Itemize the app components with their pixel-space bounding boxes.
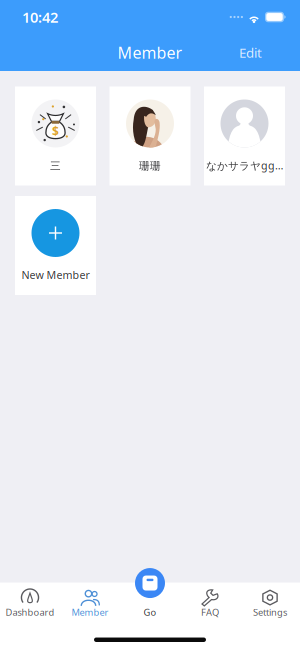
button[interactable]: なかサラヤgg… — [204, 86, 285, 185]
button[interactable]: 珊珊 — [109, 86, 190, 185]
staticText: Go — [143, 606, 156, 618]
staticText: Member — [117, 42, 182, 63]
button[interactable]: Dashboard — [0, 583, 60, 628]
button[interactable]: Go — [135, 568, 165, 598]
staticText: Settings — [253, 606, 287, 618]
staticText: Dashboard — [5, 606, 54, 618]
staticText: New Member — [21, 268, 89, 282]
staticText: $ — [52, 123, 59, 139]
staticText: 10:42 — [22, 7, 58, 27]
button[interactable]: Edit — [229, 37, 272, 68]
staticText: 三 — [50, 159, 61, 172]
staticText: 珊珊 — [139, 159, 161, 172]
button[interactable]: Go — [120, 583, 180, 628]
staticText: Member — [71, 606, 108, 618]
button[interactable]: Member — [60, 583, 120, 628]
button[interactable]: New Member — [15, 196, 96, 295]
staticText: なかサラヤgg… — [206, 158, 283, 172]
staticText: Edit — [239, 44, 262, 61]
staticText: FAQ — [201, 606, 219, 618]
button[interactable]: FAQ — [180, 583, 240, 628]
button[interactable]: $ — [15, 86, 96, 185]
button[interactable]: Settings — [240, 583, 300, 628]
